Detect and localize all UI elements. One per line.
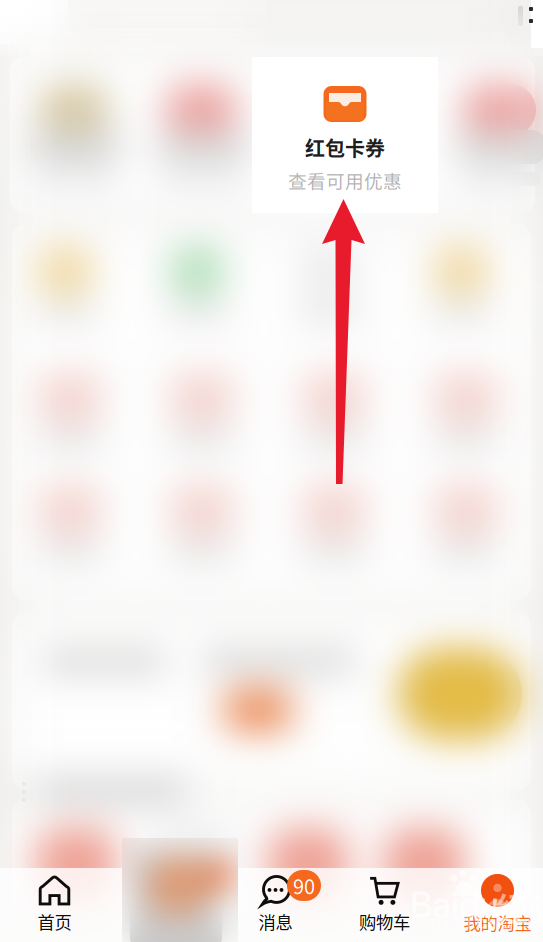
button[interactable]: 首页 — [0, 866, 109, 942]
staticText: jingyan.baidu.com — [412, 912, 543, 933]
button[interactable]: 我的淘宝 — [443, 866, 543, 942]
button[interactable]: 购物车 — [330, 866, 439, 942]
button[interactable]: 红包卡券 — [252, 57, 438, 213]
button[interactable]: 消息 — [221, 866, 330, 942]
staticText: 购物车 — [359, 909, 410, 934]
staticText: 经验 — [496, 884, 543, 930]
staticText: 我的淘宝 — [463, 910, 531, 935]
staticText: 红包卡券 — [305, 133, 385, 162]
button[interactable]: 逛逛 — [111, 866, 221, 942]
staticText: 查看可用优惠 — [288, 167, 402, 194]
staticText: Baidu — [410, 884, 499, 926]
staticText: 消息 — [258, 909, 292, 934]
staticText: 90 — [293, 871, 315, 900]
staticText: 首页 — [37, 909, 71, 934]
